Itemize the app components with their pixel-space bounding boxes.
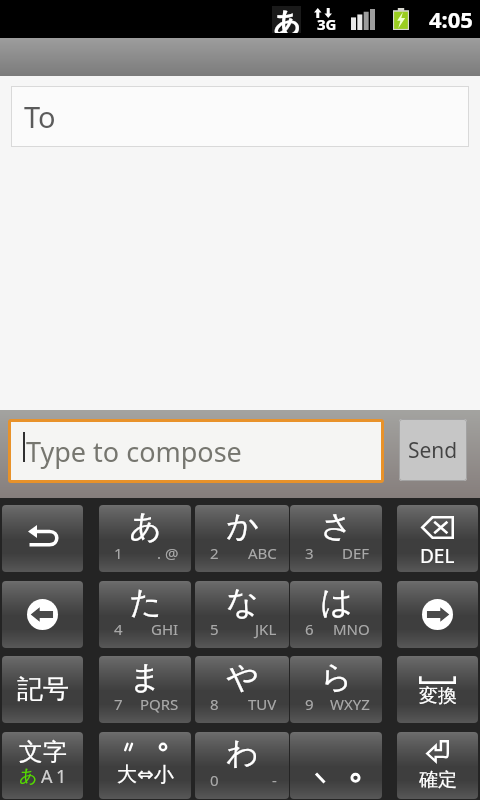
staticText: 変換 bbox=[419, 684, 457, 708]
staticText: 7 bbox=[114, 694, 123, 714]
staticText: 大⇔小 bbox=[117, 762, 174, 787]
staticText: 1 bbox=[56, 764, 67, 789]
staticText: た bbox=[129, 582, 162, 622]
staticText: GHI bbox=[151, 619, 179, 639]
button[interactable]: な bbox=[195, 581, 289, 648]
button[interactable]: Delete bbox=[397, 505, 478, 572]
button[interactable]: ら bbox=[290, 656, 382, 723]
button[interactable]: 文字種切替 bbox=[2, 732, 83, 799]
button[interactable]: ま bbox=[99, 656, 191, 723]
button[interactable]: Move cursor left bbox=[2, 581, 83, 648]
button[interactable]: Move cursor right bbox=[397, 581, 478, 648]
button[interactable]: は bbox=[290, 581, 382, 648]
staticText: Send bbox=[408, 436, 458, 465]
staticText: 2 bbox=[210, 543, 219, 563]
staticText: ABC bbox=[248, 543, 277, 563]
button[interactable]: 記号 bbox=[2, 656, 83, 723]
staticText: ま bbox=[129, 657, 162, 697]
button[interactable]: あ bbox=[99, 505, 191, 572]
staticText: TUV bbox=[248, 694, 277, 714]
button[interactable]: た bbox=[99, 581, 191, 648]
staticText: 4 bbox=[114, 619, 123, 639]
staticText: あ bbox=[273, 6, 301, 33]
staticText: - bbox=[272, 770, 277, 790]
staticText: MNO bbox=[333, 619, 370, 639]
button[interactable]: わ bbox=[195, 732, 289, 799]
staticText: WXYZ bbox=[330, 694, 370, 714]
staticText: DEL bbox=[420, 543, 455, 569]
staticText: か bbox=[226, 506, 259, 546]
button[interactable]: か bbox=[195, 505, 289, 572]
staticText: Type to compose bbox=[26, 433, 242, 470]
button[interactable]: や bbox=[195, 656, 289, 723]
staticText: A bbox=[41, 764, 53, 789]
staticText: 8 bbox=[210, 694, 219, 714]
staticText: 6 bbox=[305, 619, 314, 639]
staticText: PQRS bbox=[140, 694, 179, 714]
button[interactable]: To bbox=[11, 86, 469, 147]
button[interactable]: 、。 bbox=[290, 732, 382, 799]
staticText: あ bbox=[19, 765, 38, 788]
staticText: 0 bbox=[210, 770, 219, 790]
staticText: は bbox=[320, 582, 353, 622]
button[interactable]: 濁点・半濁点・大小 bbox=[99, 732, 191, 799]
staticText: DEF bbox=[342, 543, 370, 563]
staticText: 4:05 bbox=[429, 4, 473, 34]
staticText: . @ bbox=[157, 543, 179, 563]
staticText: 9 bbox=[305, 694, 314, 714]
staticText: わ bbox=[226, 733, 259, 773]
staticText: 文字 bbox=[19, 737, 67, 767]
staticText: To bbox=[24, 97, 56, 136]
staticText: さ bbox=[320, 506, 353, 546]
staticText: 1 bbox=[114, 543, 123, 563]
staticText: ら bbox=[320, 657, 353, 697]
staticText: 記号 bbox=[17, 673, 69, 706]
staticText: 5 bbox=[210, 619, 219, 639]
staticText: JKL bbox=[255, 619, 277, 639]
staticText: あ bbox=[129, 506, 162, 546]
button[interactable]: 変換 bbox=[397, 656, 478, 723]
staticText: や bbox=[226, 657, 259, 697]
button[interactable]: Type to compose bbox=[11, 422, 381, 480]
staticText: 確定 bbox=[419, 768, 457, 792]
staticText: 3G bbox=[317, 14, 337, 34]
button[interactable]: Undo bbox=[2, 505, 83, 572]
button[interactable]: さ bbox=[290, 505, 382, 572]
button[interactable]: Send bbox=[399, 419, 467, 481]
staticText: 3 bbox=[305, 543, 314, 563]
staticText: な bbox=[226, 582, 259, 622]
button[interactable]: 確定 bbox=[397, 732, 478, 799]
